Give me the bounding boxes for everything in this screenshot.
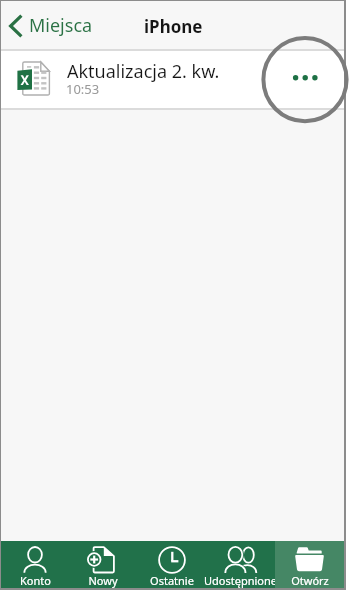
staticText: Udostępnione [204, 573, 277, 588]
staticText: Nowy [88, 573, 118, 588]
button[interactable]: More options [277, 51, 335, 108]
button[interactable]: Nowy [69, 541, 137, 588]
staticText: iPhone [144, 15, 203, 38]
button[interactable]: Konto [1, 541, 69, 588]
staticText: Miejsca [29, 13, 93, 38]
button[interactable]: Udostępnione [206, 541, 275, 588]
staticText: 10:53 [66, 80, 100, 98]
other: Excel workbook [17, 60, 51, 96]
staticText: Ostatnie [150, 573, 194, 588]
button[interactable]: Ostatnie [137, 541, 206, 588]
button[interactable]: Miejsca [5, 1, 103, 49]
button[interactable]: Otwórz [275, 541, 344, 588]
staticText: Konto [20, 573, 51, 588]
staticText: Aktualizacja 2. kw. [67, 59, 220, 84]
staticText: Otwórz [291, 573, 329, 588]
button[interactable]: Excel workbook [1, 51, 344, 108]
